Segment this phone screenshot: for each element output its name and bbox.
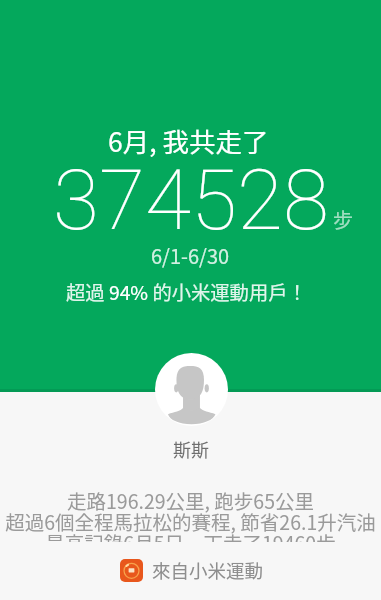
staticText: 斯斯	[173, 436, 209, 462]
staticText: 6/1-6/30	[151, 241, 230, 270]
staticText: 6月, 我共走了	[108, 121, 269, 159]
staticText: 超過 94% 的小米運動用戶！	[66, 278, 307, 306]
staticText: 步	[333, 205, 353, 234]
staticText: 來自小米運動	[152, 557, 264, 584]
staticText: 374528	[53, 151, 329, 249]
staticText: 走路196.29公里, 跑步65公里 超過6個全程馬拉松的賽程, 節省26.1升…	[0, 486, 381, 542]
